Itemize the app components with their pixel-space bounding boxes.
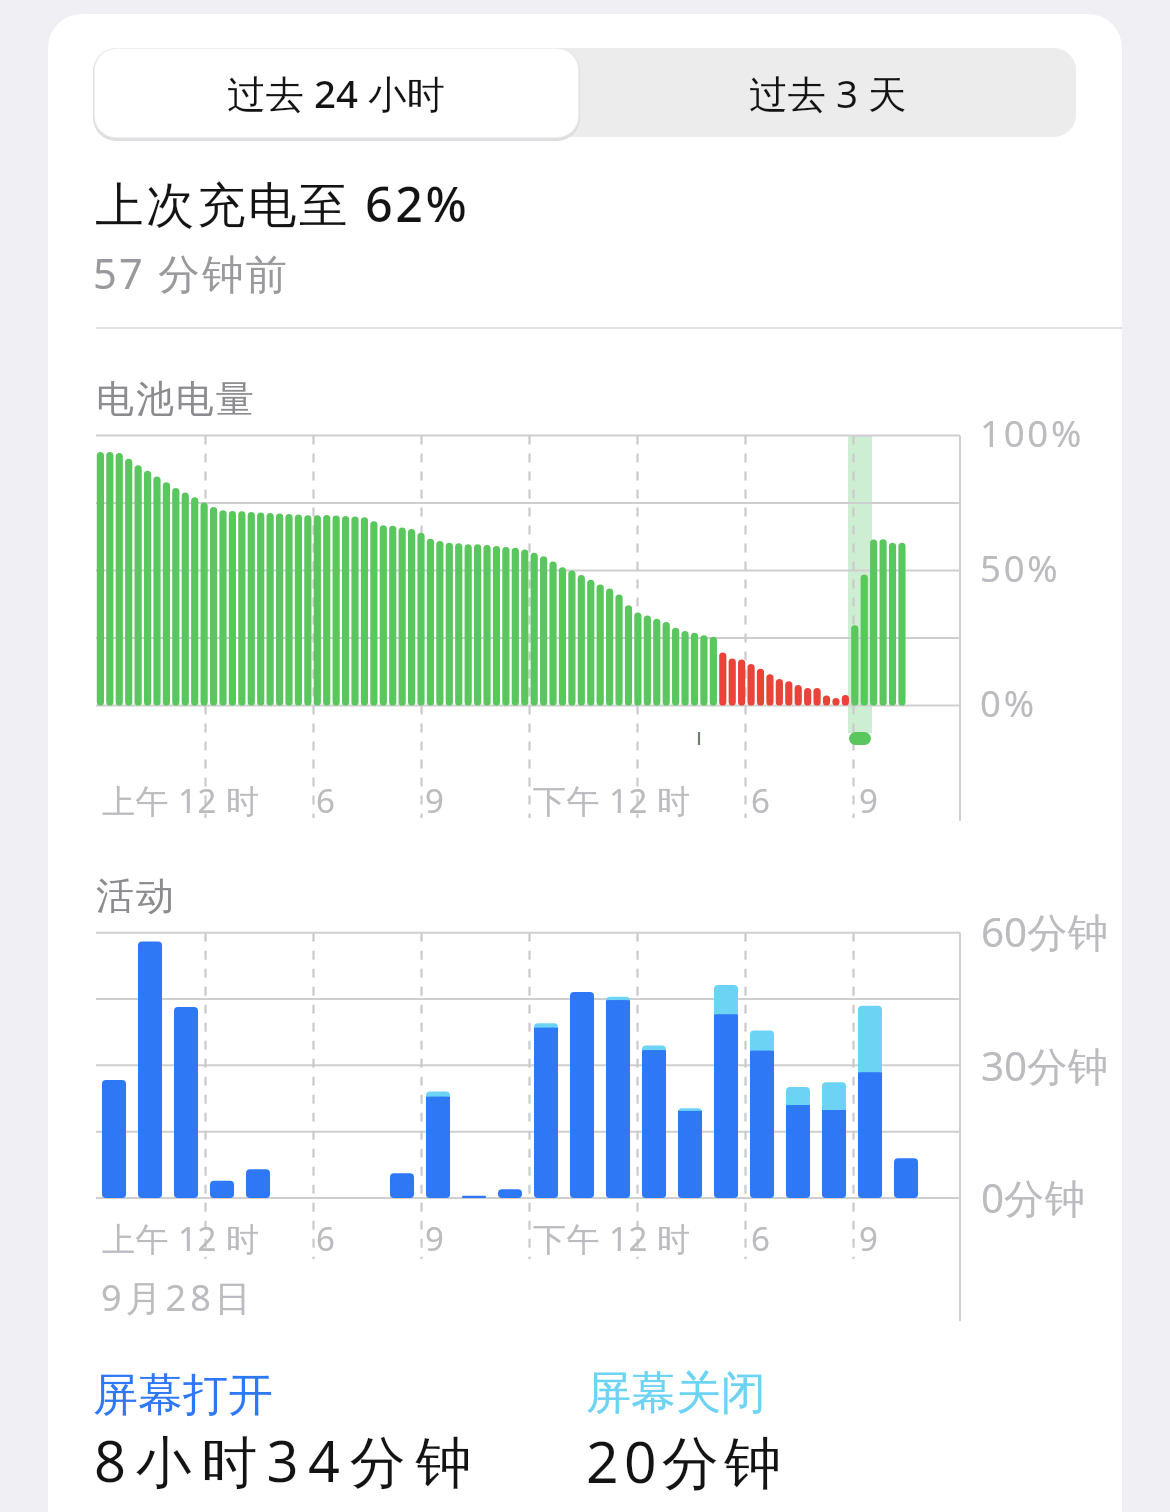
- staticText: 9: [425, 778, 444, 823]
- staticText: 上次充电至 62%: [95, 170, 470, 236]
- staticText: 9: [425, 1216, 444, 1261]
- staticText: 60分钟: [981, 904, 1108, 959]
- staticText: 下午 12 时: [533, 778, 691, 823]
- staticText: 过去 3 天: [749, 67, 907, 120]
- staticText: 6: [751, 1216, 770, 1261]
- staticText: 30分钟: [981, 1038, 1108, 1093]
- staticText: 0分钟: [981, 1170, 1085, 1225]
- staticText: 0%: [980, 678, 1037, 728]
- staticText: 过去 24 小时: [227, 67, 446, 120]
- staticText: 9: [859, 778, 878, 823]
- staticText: 6: [316, 778, 335, 823]
- staticText: 上午 12 时: [102, 1216, 260, 1261]
- staticText: 6: [316, 1216, 335, 1261]
- staticText: 电池电量: [96, 375, 256, 423]
- staticText: 8小时34分钟: [94, 1422, 481, 1498]
- staticText: 9月28日: [101, 1273, 255, 1322]
- staticText: 活动: [96, 872, 176, 920]
- staticText: 上午 12 时: [102, 778, 260, 823]
- staticText: 屏幕打开: [93, 1367, 273, 1424]
- staticText: 屏幕关闭: [586, 1365, 766, 1422]
- staticText: 下午 12 时: [533, 1216, 691, 1261]
- button[interactable]: 过去 24 小时: [95, 49, 578, 137]
- staticText: 100%: [980, 408, 1085, 458]
- staticText: 6: [751, 778, 770, 823]
- staticText: 50%: [980, 543, 1061, 593]
- staticText: 20分钟: [586, 1422, 787, 1500]
- button[interactable]: 过去 3 天: [582, 52, 1074, 134]
- staticText: 9: [859, 1216, 878, 1261]
- staticText: 57 分钟前: [93, 245, 290, 302]
